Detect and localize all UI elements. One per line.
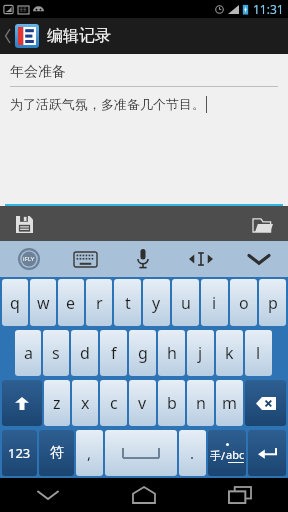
staticText: v bbox=[138, 392, 147, 414]
button[interactable]: y bbox=[143, 279, 170, 326]
staticText: 11:31 bbox=[253, 1, 284, 17]
button[interactable] bbox=[245, 380, 286, 426]
button[interactable]: m bbox=[216, 380, 243, 426]
button[interactable]: Move cursor bbox=[172, 241, 230, 277]
staticText: 手/ bbox=[210, 448, 226, 463]
staticText: s bbox=[52, 342, 60, 364]
staticText: o bbox=[239, 292, 249, 314]
button[interactable]: 手/ bbox=[208, 430, 246, 476]
button[interactable] bbox=[248, 430, 286, 476]
button[interactable]: w bbox=[30, 279, 56, 326]
staticText: r bbox=[96, 292, 103, 314]
button[interactable] bbox=[2, 380, 42, 426]
button[interactable]: Home bbox=[96, 478, 192, 512]
staticText: 符 bbox=[50, 444, 64, 462]
button[interactable]: k bbox=[216, 330, 243, 376]
button[interactable]: t bbox=[114, 279, 141, 326]
button[interactable]: e bbox=[58, 279, 84, 326]
button[interactable]: a bbox=[15, 330, 41, 376]
staticText: t bbox=[125, 292, 131, 314]
button[interactable]: q bbox=[2, 279, 28, 326]
staticText: b bbox=[167, 392, 177, 414]
staticText: j bbox=[198, 342, 203, 364]
button[interactable]: 123 bbox=[2, 430, 37, 476]
staticText: c bbox=[110, 392, 118, 414]
staticText: n bbox=[196, 392, 206, 414]
button[interactable]: o bbox=[230, 279, 257, 326]
button[interactable]: d bbox=[71, 330, 98, 376]
staticText: k bbox=[225, 342, 234, 364]
button[interactable]: n bbox=[187, 380, 214, 426]
button[interactable]: z bbox=[44, 380, 70, 426]
button[interactable]: 编辑记录 bbox=[0, 18, 288, 54]
button[interactable] bbox=[105, 430, 177, 476]
button[interactable]: c bbox=[100, 380, 127, 426]
staticText: x bbox=[81, 392, 90, 414]
staticText: d bbox=[80, 342, 90, 364]
button[interactable]: s bbox=[43, 330, 69, 376]
staticText: 年会准备 bbox=[10, 63, 66, 81]
staticText: , bbox=[87, 443, 92, 463]
button[interactable]: f bbox=[100, 330, 127, 376]
button[interactable]: b bbox=[158, 380, 185, 426]
staticText: u bbox=[181, 292, 191, 314]
button[interactable]: . bbox=[179, 430, 206, 476]
staticText: w bbox=[37, 292, 50, 314]
button[interactable]: Save bbox=[12, 212, 36, 236]
staticText: m bbox=[222, 392, 237, 414]
staticText: a bbox=[24, 342, 33, 364]
staticText: i bbox=[212, 292, 217, 314]
button[interactable]: j bbox=[187, 330, 214, 376]
button[interactable]: Recent apps bbox=[192, 478, 288, 512]
button[interactable]: l bbox=[245, 330, 272, 376]
staticText: abc bbox=[226, 447, 245, 462]
button[interactable]: Back bbox=[0, 478, 96, 512]
button[interactable]: Hide keyboard bbox=[230, 241, 288, 277]
button[interactable]: x bbox=[72, 380, 98, 426]
button[interactable]: r bbox=[86, 279, 112, 326]
button[interactable]: g bbox=[129, 330, 156, 376]
staticText: l bbox=[256, 342, 261, 364]
button[interactable]: 符 bbox=[39, 430, 74, 476]
staticText: h bbox=[167, 342, 177, 364]
staticText: y bbox=[152, 292, 161, 314]
staticText: iFLY bbox=[23, 255, 35, 263]
button[interactable]: u bbox=[172, 279, 199, 326]
staticText: . bbox=[190, 443, 195, 463]
staticText: g bbox=[138, 342, 148, 364]
button[interactable]: Keyboard layout bbox=[57, 241, 114, 277]
button[interactable]: Open folder bbox=[250, 211, 276, 237]
staticText: p bbox=[268, 292, 278, 314]
staticText: q bbox=[10, 292, 20, 314]
staticText: f bbox=[111, 342, 117, 364]
button[interactable]: h bbox=[158, 330, 185, 376]
button[interactable]: p bbox=[259, 279, 286, 326]
button[interactable]: , bbox=[76, 430, 103, 476]
staticText: 编辑记录 bbox=[47, 26, 111, 46]
staticText: z bbox=[53, 392, 61, 414]
staticText: e bbox=[66, 292, 76, 314]
staticText: 为了活跃气氛，多准备几个节目。 bbox=[10, 96, 205, 112]
button[interactable]: v bbox=[129, 380, 156, 426]
button[interactable]: Voice input bbox=[114, 241, 172, 277]
button[interactable]: i bbox=[201, 279, 228, 326]
staticText: 123 bbox=[8, 444, 31, 462]
button[interactable]: iFly input bbox=[0, 241, 57, 277]
